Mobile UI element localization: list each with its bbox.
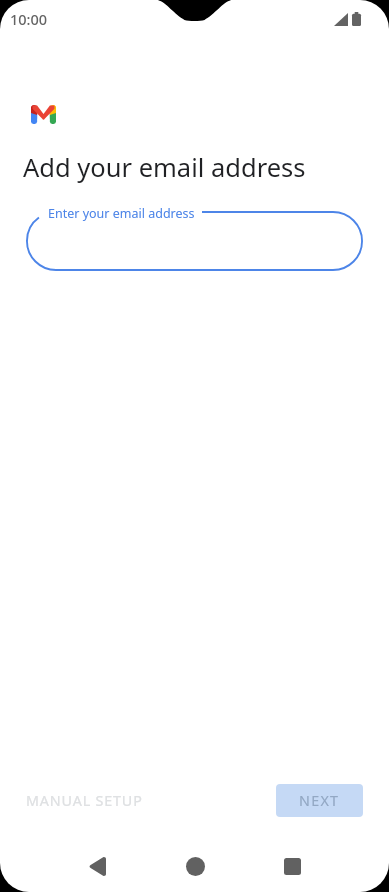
staticText: Add your email address bbox=[23, 150, 306, 185]
staticText: Enter your email address bbox=[48, 205, 195, 222]
staticText: MANUAL SETUP bbox=[26, 791, 143, 810]
button[interactable]: Recent apps bbox=[268, 842, 316, 890]
button[interactable]: Home bbox=[171, 842, 219, 890]
button[interactable]: Back bbox=[73, 842, 121, 890]
button[interactable]: NEXT bbox=[276, 784, 363, 817]
staticText: NEXT bbox=[299, 791, 340, 810]
staticText: 10:00 bbox=[10, 9, 48, 29]
button[interactable]: Enter your email address bbox=[26, 211, 363, 271]
button[interactable]: MANUAL SETUP bbox=[17, 783, 152, 818]
